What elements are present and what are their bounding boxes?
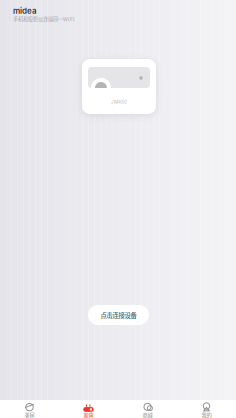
staticText: midea <box>13 6 37 16</box>
button[interactable]: 我的 <box>177 400 236 418</box>
staticText: 点击连接设备 <box>100 310 136 320</box>
staticText: 我的 <box>201 411 211 418</box>
staticText: 美居 <box>24 411 34 418</box>
staticText: JM4S0 <box>111 99 127 105</box>
button[interactable]: JM4S0 <box>82 59 156 114</box>
button[interactable]: 家电 <box>59 400 118 418</box>
staticText: 商城 <box>142 411 152 418</box>
button[interactable]: 商城 <box>118 400 177 418</box>
staticText: 家电 <box>83 411 93 418</box>
button[interactable]: 点击连接设备 <box>88 305 149 325</box>
staticText: 手机和投影仪连接同一WIFI <box>13 15 75 23</box>
button[interactable]: 美居 <box>0 400 59 418</box>
